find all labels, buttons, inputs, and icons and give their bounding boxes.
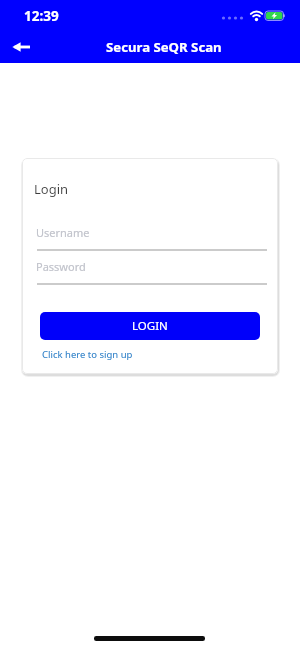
staticText: LOGIN [132, 318, 168, 334]
staticText: Secura SeQR Scan [106, 38, 222, 56]
button[interactable] [4, 36, 38, 60]
button[interactable]: Click here to sign up [42, 348, 133, 361]
staticText: Username [36, 225, 90, 240]
staticText: Password [36, 259, 86, 274]
button[interactable]: LOGIN [40, 312, 260, 340]
staticText: 12:39 [24, 7, 59, 25]
staticText: Login [34, 180, 69, 198]
